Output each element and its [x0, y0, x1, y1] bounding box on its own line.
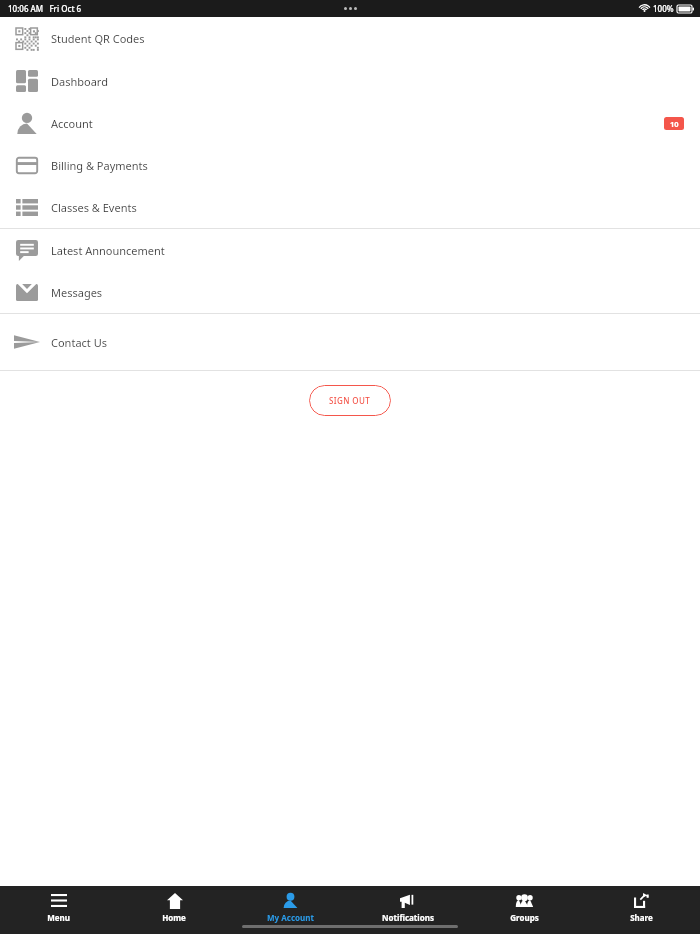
button[interactable]: My Account: [232, 886, 349, 934]
staticText: Student QR Codes: [51, 31, 145, 46]
button[interactable]: Notifications: [349, 886, 466, 934]
button[interactable]: SIGN OUT: [309, 385, 391, 416]
button[interactable]: Student QR Codes: [0, 17, 700, 60]
staticText: Groups: [510, 912, 539, 923]
button[interactable]: Home: [116, 886, 232, 934]
button[interactable]: Groups: [466, 886, 583, 934]
button[interactable]: Messages: [0, 271, 700, 313]
staticText: My Account: [267, 912, 314, 923]
button[interactable]: Classes & Events: [0, 186, 700, 228]
staticText: Home: [162, 912, 186, 923]
staticText: Contact Us: [51, 335, 107, 350]
staticText: Classes & Events: [51, 200, 137, 215]
button[interactable]: Account: [0, 102, 700, 144]
staticText: SIGN OUT: [329, 395, 371, 406]
staticText: Latest Announcement: [51, 243, 165, 258]
staticText: 10:06 AM Fri Oct 6: [8, 3, 82, 14]
staticText: 100%: [653, 3, 674, 14]
button[interactable]: Menu: [0, 886, 116, 934]
staticText: Notifications: [382, 912, 434, 923]
button[interactable]: Dashboard: [0, 60, 700, 102]
button[interactable]: Latest Announcement: [0, 229, 700, 271]
button[interactable]: Billing & Payments: [0, 144, 700, 186]
staticText: 10: [670, 119, 679, 129]
staticText: Billing & Payments: [51, 158, 148, 173]
button[interactable]: Share: [583, 886, 700, 934]
staticText: Dashboard: [51, 74, 108, 89]
button[interactable]: Contact Us: [0, 314, 700, 370]
staticText: Messages: [51, 285, 103, 300]
staticText: Menu: [47, 912, 70, 923]
staticText: Account: [51, 116, 93, 131]
staticText: Share: [630, 912, 653, 923]
